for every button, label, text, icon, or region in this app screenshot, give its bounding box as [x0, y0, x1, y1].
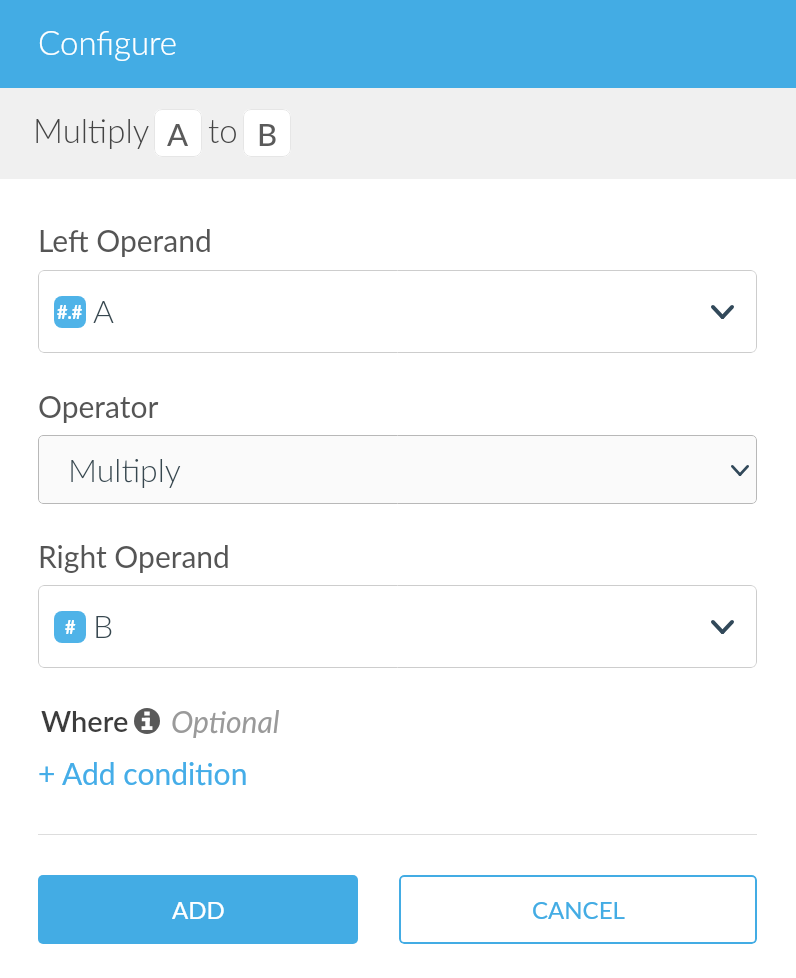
button[interactable]: #: [38, 585, 757, 668]
staticText: Multiply: [68, 450, 181, 488]
staticText: + Add condition: [38, 755, 248, 791]
staticText: to: [208, 110, 238, 150]
staticText: #.#: [57, 301, 83, 323]
staticText: B: [257, 115, 278, 152]
staticText: A: [93, 291, 114, 329]
staticText: Left Operand: [38, 222, 212, 258]
staticText: Optional: [171, 703, 280, 739]
staticText: A: [167, 115, 189, 152]
staticText: ADD: [172, 895, 225, 924]
button[interactable]: B: [243, 109, 291, 157]
other: Open menu: [711, 620, 734, 634]
staticText: #: [65, 616, 76, 638]
button[interactable]: + Add condition: [38, 753, 248, 793]
staticText: Right Operand: [38, 538, 230, 574]
staticText: Operator: [38, 388, 159, 424]
other: Open list: [731, 465, 749, 476]
button[interactable]: A: [154, 109, 202, 157]
staticText: Multiply: [33, 110, 150, 150]
staticText: Configure: [38, 22, 178, 62]
button[interactable]: CANCEL: [399, 875, 757, 944]
staticText: B: [93, 606, 114, 644]
staticText: CANCEL: [532, 895, 625, 924]
other: Info: [134, 708, 160, 734]
button[interactable]: Multiply: [38, 435, 757, 504]
staticText: Where: [41, 703, 129, 738]
button[interactable]: #.#: [38, 270, 757, 353]
button[interactable]: ADD: [38, 875, 358, 944]
other: Open menu: [711, 305, 734, 319]
